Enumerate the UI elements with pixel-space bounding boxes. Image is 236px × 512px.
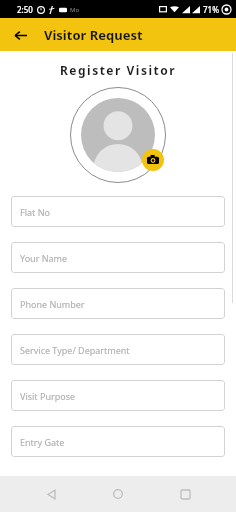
- staticText: Service Type/ Department: [20, 344, 130, 356]
- staticText: Entry Gate: [20, 436, 65, 448]
- staticText: Register Visitor: [0, 62, 236, 78]
- staticText: 2:50: [17, 4, 33, 15]
- staticText: Mo: [70, 6, 80, 14]
- button[interactable]: Visit Purpose: [11, 380, 225, 411]
- button[interactable]: Phone Number: [11, 288, 225, 319]
- button[interactable]: Recent apps: [169, 478, 201, 510]
- staticText: Visit Purpose: [20, 390, 76, 402]
- staticText: 71%: [203, 4, 219, 15]
- button[interactable]: Flat No: [11, 196, 225, 227]
- button[interactable]: Your Name: [11, 242, 225, 273]
- button[interactable]: Back: [8, 23, 32, 47]
- button[interactable]: Entry Gate: [11, 426, 225, 457]
- button[interactable]: Profile photo: [81, 98, 155, 172]
- button[interactable]: Service Type/ Department: [11, 334, 225, 365]
- staticText: Phone Number: [20, 298, 85, 310]
- staticText: Your Name: [20, 252, 68, 264]
- button[interactable]: Change photo: [142, 149, 164, 171]
- staticText: Flat No: [20, 206, 50, 218]
- staticText: Visitor Request: [44, 26, 143, 44]
- button[interactable]: Home: [102, 478, 134, 510]
- button[interactable]: Back: [35, 478, 67, 510]
